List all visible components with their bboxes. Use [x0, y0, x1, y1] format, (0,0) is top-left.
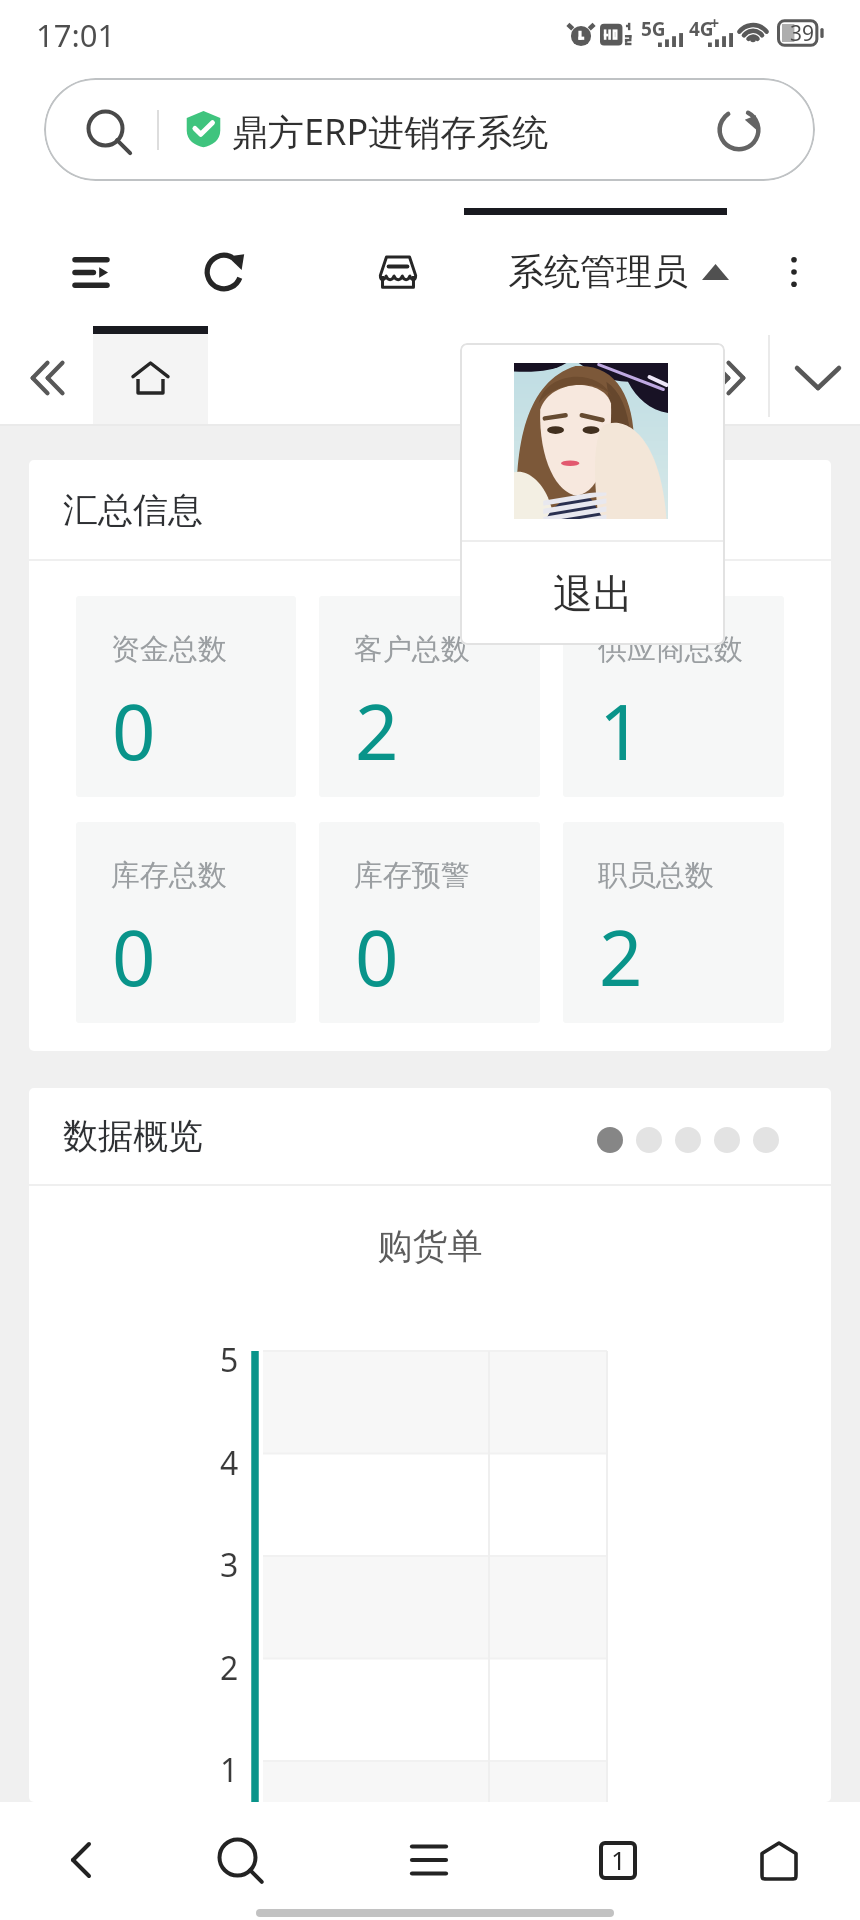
button[interactable]: Store: [355, 208, 441, 326]
button[interactable]: 库存预警: [319, 822, 540, 1023]
button[interactable]: Search: [198, 1818, 284, 1902]
button[interactable]: Previous tab: [4, 326, 90, 426]
staticText: 鼎方ERP进销存系统: [232, 107, 549, 156]
button[interactable]: Home tab: [93, 326, 208, 426]
staticText: 库存预警: [354, 857, 470, 894]
staticText: 资金总数: [111, 631, 227, 668]
staticText: 0: [112, 679, 156, 783]
staticText: 5: [220, 1338, 239, 1382]
button[interactable]: [714, 1127, 740, 1153]
staticText: 0: [355, 905, 399, 1009]
staticText: 汇总信息: [63, 488, 203, 532]
button[interactable]: 供应商总数: [563, 596, 784, 797]
button[interactable]: [208, 326, 678, 426]
staticText: 4G: [689, 16, 714, 42]
button[interactable]: Refresh: [181, 208, 267, 326]
staticText: 退出: [553, 569, 633, 619]
button[interactable]: Menu: [386, 1818, 472, 1902]
button[interactable]: 库存总数: [76, 822, 296, 1023]
button[interactable]: 职员总数: [563, 822, 784, 1023]
staticText: 职员总数: [598, 857, 714, 894]
staticText: 2: [599, 905, 643, 1009]
staticText: 购货单: [29, 1224, 831, 1268]
button[interactable]: [597, 1127, 623, 1153]
staticText: 客户总数: [354, 631, 470, 668]
staticText: 2: [355, 679, 399, 783]
staticText: 数据概览: [63, 1114, 203, 1158]
button[interactable]: 退出: [460, 542, 725, 645]
staticText: 39: [790, 19, 815, 47]
button[interactable]: [753, 1127, 779, 1153]
button[interactable]: [636, 1127, 662, 1153]
button[interactable]: More options: [752, 208, 836, 326]
staticText: 库存总数: [111, 857, 227, 894]
button[interactable]: Next tab: [688, 326, 768, 426]
staticText: 17:01: [36, 14, 116, 56]
staticText: 3: [220, 1543, 239, 1587]
button[interactable]: 资金总数: [76, 596, 296, 797]
staticText: 1: [220, 1748, 239, 1792]
staticText: +: [710, 12, 720, 34]
button[interactable]: 系统管理员: [488, 208, 738, 326]
button[interactable]: Home: [736, 1818, 822, 1902]
button[interactable]: Tabs, 1 open: [575, 1818, 661, 1902]
staticText: 2: [220, 1646, 239, 1690]
staticText: 1: [599, 679, 643, 783]
staticText: 5G: [641, 16, 666, 42]
button[interactable]: 鼎方ERP进销存系统: [44, 78, 815, 181]
staticText: 1: [611, 1842, 626, 1877]
staticText: 4: [220, 1441, 239, 1485]
button[interactable]: [675, 1127, 701, 1153]
staticText: 0: [112, 905, 156, 1009]
button[interactable]: Reading list: [48, 208, 134, 326]
staticText: 系统管理员: [508, 249, 688, 294]
button[interactable]: Back: [38, 1818, 124, 1902]
button[interactable]: 客户总数: [319, 596, 540, 797]
button[interactable]: Show all tabs: [775, 326, 860, 426]
staticText: 供应商总数: [598, 631, 743, 668]
